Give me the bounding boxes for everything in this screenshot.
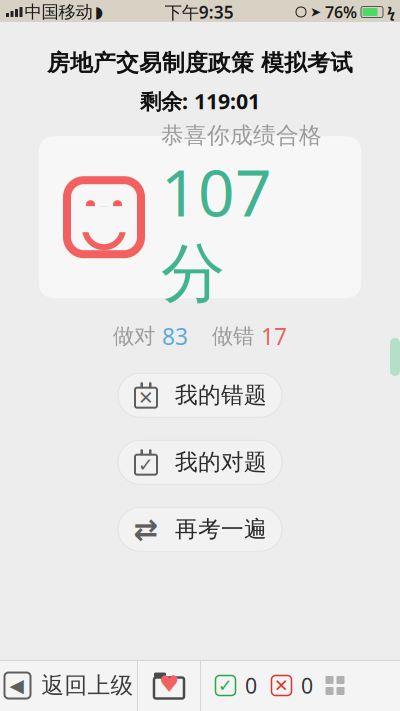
staticText: ✕	[138, 387, 154, 408]
staticText: ◗	[94, 3, 102, 21]
staticText: ✓	[138, 454, 154, 475]
staticText: 0	[245, 671, 257, 700]
staticText: ✕	[274, 676, 289, 695]
staticText: ϟ	[387, 2, 395, 22]
staticText: 做对	[113, 323, 155, 349]
staticText: 下午9:35	[165, 0, 234, 23]
button[interactable]: ⇄	[118, 507, 282, 551]
staticText: 76%	[325, 1, 357, 23]
staticText: ➤	[310, 4, 321, 19]
staticText: ♥	[159, 671, 179, 697]
staticText: 房地产交易制度政策 模拟考试	[47, 49, 353, 77]
staticText: 恭喜你成绩合格	[161, 121, 322, 149]
staticText: 再考一遍	[175, 515, 267, 543]
staticText: 17	[261, 321, 287, 351]
staticText: 剩余: 119:01	[140, 87, 260, 115]
staticText: 中国移动	[24, 1, 92, 23]
button[interactable]: ◀	[0, 660, 137, 711]
staticText: ◀	[9, 675, 23, 696]
staticText: 返回上级	[41, 672, 133, 699]
staticText: 我的对题	[175, 448, 267, 476]
staticText: 0	[301, 671, 313, 700]
button[interactable]: ✓	[118, 440, 282, 484]
staticText: 我的错题	[175, 381, 267, 409]
staticText: 做错	[212, 323, 254, 349]
staticText: 107分	[161, 149, 272, 313]
button[interactable]: ✕	[118, 373, 282, 417]
staticText: 83	[162, 321, 188, 351]
button[interactable]: 收藏夹	[138, 660, 200, 711]
staticText: ⇄	[133, 513, 158, 546]
staticText: ✓	[218, 676, 233, 695]
